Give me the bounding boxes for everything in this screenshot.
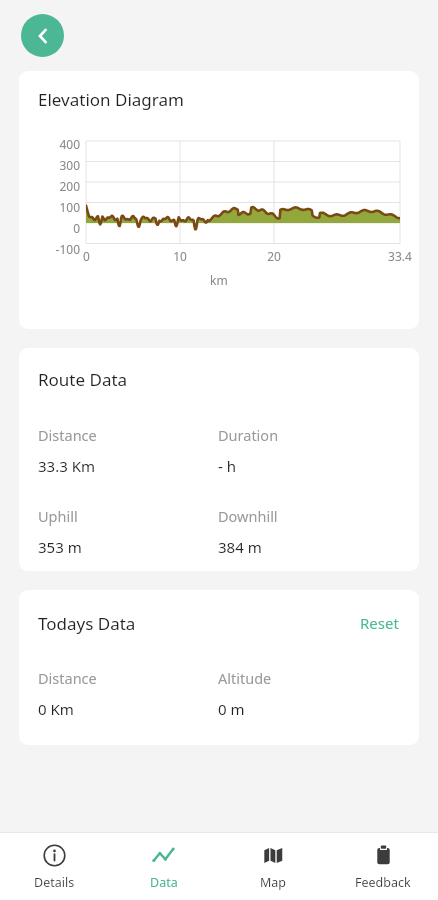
staticText: 400 — [59, 136, 80, 152]
button[interactable]: Feedback — [328, 833, 438, 900]
button[interactable]: Back — [21, 14, 64, 57]
staticText: 300 — [59, 157, 80, 173]
staticText: km — [210, 272, 228, 288]
button[interactable]: Details — [0, 833, 109, 900]
button[interactable]: Map — [218, 833, 328, 900]
staticText: Elevation Diagram — [38, 88, 184, 111]
staticText: Uphill — [38, 506, 78, 526]
staticText: Downhill — [218, 506, 278, 526]
staticText: Altitude — [218, 668, 272, 688]
staticText: Todays Data — [38, 612, 136, 635]
staticText: 0 m — [218, 699, 245, 719]
staticText: 10 — [173, 248, 187, 264]
staticText: Data — [150, 874, 178, 891]
button[interactable]: Data — [109, 833, 218, 900]
staticText: 0 — [83, 248, 90, 264]
button[interactable]: Reset — [357, 610, 402, 636]
staticText: Distance — [38, 668, 97, 688]
staticText: Reset — [360, 613, 399, 633]
staticText: - h — [218, 456, 237, 476]
staticText: Duration — [218, 425, 279, 445]
staticText: 33.3 Km — [38, 456, 95, 476]
staticText: 33.4 — [388, 248, 412, 264]
staticText: 384 m — [218, 537, 262, 557]
staticText: Details — [34, 874, 75, 891]
staticText: 200 — [59, 178, 80, 194]
staticText: 0 Km — [38, 699, 74, 719]
staticText: Route Data — [38, 368, 128, 391]
staticText: 353 m — [38, 537, 82, 557]
staticText: Map — [260, 874, 287, 891]
staticText: 100 — [59, 199, 80, 215]
staticText: Feedback — [355, 874, 411, 891]
staticText: Distance — [38, 425, 97, 445]
staticText: -100 — [55, 241, 80, 257]
staticText: 20 — [267, 248, 281, 264]
staticText: 0 — [73, 220, 80, 236]
